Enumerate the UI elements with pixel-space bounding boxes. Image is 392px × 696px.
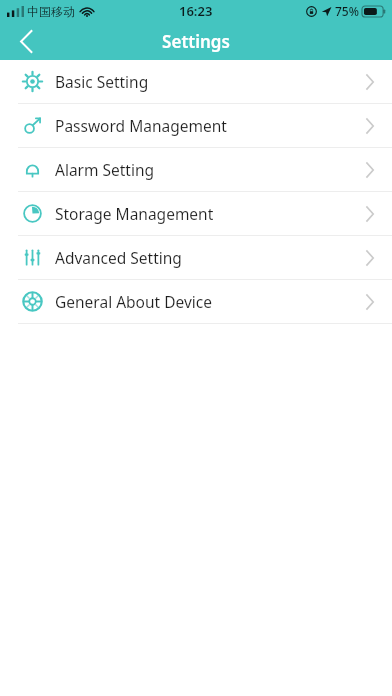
button[interactable]: Basic Setting: [0, 60, 392, 103]
staticText: Alarm Setting: [55, 159, 155, 180]
staticText: 中国移动: [27, 4, 75, 19]
staticText: Settings: [162, 30, 230, 53]
staticText: 16:23: [179, 2, 213, 20]
button[interactable]: Storage Management: [0, 192, 392, 235]
staticText: Basic Setting: [55, 71, 149, 92]
staticText: General About Device: [55, 291, 212, 312]
button[interactable]: Back: [0, 22, 52, 60]
staticText: Advanced Setting: [55, 247, 182, 268]
button[interactable]: General About Device: [0, 280, 392, 323]
button[interactable]: Alarm Setting: [0, 148, 392, 191]
staticText: Storage Management: [55, 203, 214, 224]
staticText: Password Management: [55, 115, 227, 136]
button[interactable]: Advanced Setting: [0, 236, 392, 279]
button[interactable]: Password Management: [0, 104, 392, 147]
staticText: 75%: [335, 3, 359, 19]
